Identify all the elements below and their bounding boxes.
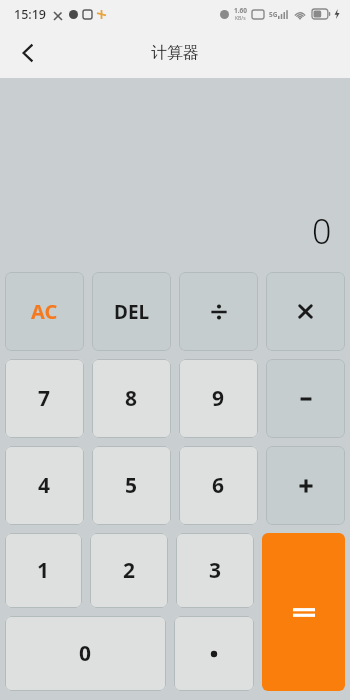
button[interactable]: 8: [92, 359, 171, 438]
button[interactable]: dot: [174, 616, 254, 691]
staticText: AC: [31, 298, 58, 325]
button[interactable]: plus: [266, 446, 345, 525]
button[interactable]: 3: [176, 533, 254, 608]
staticText: 0: [312, 208, 332, 254]
button[interactable]: 1: [5, 533, 82, 608]
button[interactable]: 5: [92, 446, 171, 525]
staticText: 计算器: [151, 43, 199, 63]
staticText: KB/s: [235, 15, 246, 22]
staticText: 9: [212, 384, 225, 413]
button[interactable]: DEL: [92, 272, 171, 351]
button[interactable]: minus: [266, 359, 345, 438]
staticText: 2: [123, 556, 136, 585]
staticText: 15:19: [14, 6, 47, 23]
button[interactable]: 6: [179, 446, 258, 525]
staticText: 1: [37, 556, 50, 585]
staticText: 5G: [269, 10, 278, 19]
staticText: 8: [125, 384, 138, 413]
button[interactable]: 4: [5, 446, 84, 525]
button[interactable]: equals: [262, 533, 345, 691]
button[interactable]: AC: [5, 272, 84, 351]
button[interactable]: 9: [179, 359, 258, 438]
staticText: DEL: [114, 299, 150, 325]
button[interactable]: 0: [5, 616, 166, 691]
staticText: 4: [38, 471, 51, 500]
button[interactable]: divide: [179, 272, 258, 351]
button[interactable]: 2: [90, 533, 168, 608]
staticText: 7: [38, 384, 51, 413]
staticText: 1.60: [234, 6, 247, 15]
staticText: 3: [209, 556, 222, 585]
button[interactable]: multiply: [266, 272, 345, 351]
button[interactable]: Back: [6, 31, 50, 75]
staticText: 6: [212, 471, 225, 500]
staticText: 5: [125, 471, 138, 500]
button[interactable]: 7: [5, 359, 84, 438]
staticText: 0: [79, 639, 92, 668]
